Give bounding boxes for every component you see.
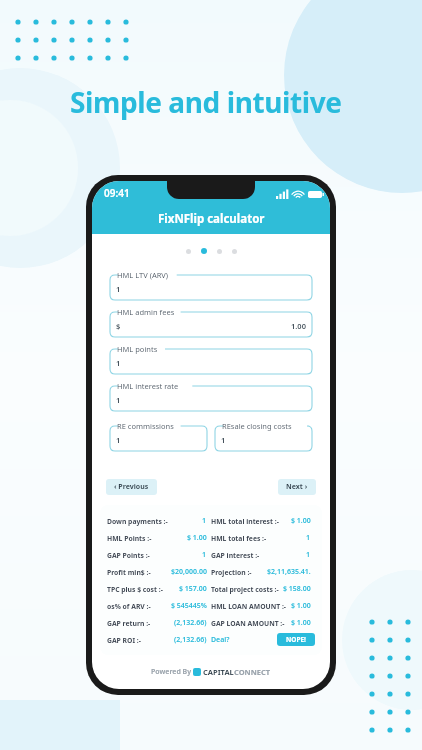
staticText: 1 xyxy=(221,435,226,445)
staticText: 1 xyxy=(202,516,207,526)
staticText: HML admin fees xyxy=(117,307,175,317)
staticText: $2,11,635.41. xyxy=(267,567,311,577)
staticText: 1 xyxy=(116,435,121,445)
staticText: Down payments :- xyxy=(107,517,168,526)
staticText: GAP ROI :- xyxy=(107,636,141,645)
staticText: REsale closing costs xyxy=(222,421,292,431)
staticText: CONNECT xyxy=(234,667,271,677)
button[interactable]: REsale closing costs xyxy=(215,421,312,451)
staticText: 09:41 xyxy=(104,186,130,200)
staticText: os% of ARV :- xyxy=(107,602,151,611)
button[interactable]: HML interest rate xyxy=(110,381,312,411)
staticText: HML points xyxy=(117,344,158,354)
staticText: $ 545445% xyxy=(171,601,207,611)
staticText: $ 1.00 xyxy=(291,601,311,611)
staticText: HML Points :- xyxy=(107,534,152,543)
button[interactable]: RE commissions xyxy=(110,421,207,451)
staticText: $ 1.00 xyxy=(187,533,207,543)
staticText: $ 157.00 xyxy=(179,584,207,594)
staticText: HML interest rate xyxy=(117,381,179,391)
staticText: RE commissions xyxy=(117,421,174,431)
button[interactable]: NOPE! xyxy=(277,633,315,646)
staticText: HML LTV (ARV) xyxy=(117,270,169,280)
staticText: Next › xyxy=(286,482,308,492)
staticText: 1 xyxy=(116,395,121,405)
staticText: 1 xyxy=(116,358,121,368)
staticText: 1 xyxy=(306,550,311,560)
staticText: $ 158.00 xyxy=(283,584,311,594)
staticText: $ 1.00 xyxy=(291,516,311,526)
staticText: (2,132.66) xyxy=(174,618,207,628)
staticText: Total project costs :- xyxy=(211,585,279,594)
staticText: CAPITAL xyxy=(203,667,234,677)
staticText: HML LOAN AMOUNT :- xyxy=(211,602,287,611)
staticText: GAP Points :- xyxy=(107,551,150,560)
staticText: FixNFlip calculator xyxy=(158,211,265,227)
staticText: TPC plus $ cost :- xyxy=(107,585,163,594)
staticText: ‹ Previous xyxy=(114,482,149,492)
button[interactable]: Next › xyxy=(278,479,316,495)
button[interactable]: HML LTV (ARV) xyxy=(110,270,312,300)
staticText: GAP LOAN AMOUNT :- xyxy=(211,619,285,628)
staticText: 1.00 xyxy=(291,321,306,331)
staticText: $ xyxy=(116,321,121,331)
staticText: 1 xyxy=(116,284,121,294)
staticText: Powered By xyxy=(151,667,193,677)
staticText: GAP interest :- xyxy=(211,551,260,560)
staticText: Deal? xyxy=(211,635,230,645)
staticText: 1 xyxy=(202,550,207,560)
button[interactable]: HML admin fees xyxy=(110,307,312,337)
staticText: Profit min$ :- xyxy=(107,568,151,577)
staticText: $ 1.00 xyxy=(291,618,311,628)
button[interactable]: ‹ Previous xyxy=(106,479,157,495)
staticText: HML total interest :- xyxy=(211,517,279,526)
staticText: (2,132.66) xyxy=(174,635,207,645)
staticText: Projection :- xyxy=(211,568,252,577)
staticText: Simple and intuitive xyxy=(70,83,342,121)
staticText: NOPE! xyxy=(286,635,306,644)
staticText: GAP return :- xyxy=(107,619,151,628)
staticText: $20,000.00 xyxy=(171,567,207,577)
staticText: 1 xyxy=(306,533,311,543)
button[interactable]: HML points xyxy=(110,344,312,374)
staticText: HML total fees :- xyxy=(211,534,267,543)
